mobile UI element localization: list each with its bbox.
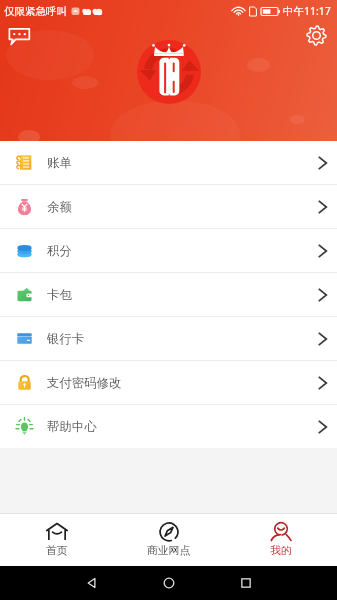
button[interactable]: Home <box>161 575 177 591</box>
button[interactable]: 银行卡 <box>0 317 337 360</box>
button[interactable]: 首页 <box>0 513 113 566</box>
button[interactable]: 帮助中心 <box>0 405 337 448</box>
staticText: 积分 <box>47 243 72 259</box>
button[interactable]: Settings <box>306 25 327 46</box>
button[interactable]: 支付密码修改 <box>0 361 337 404</box>
button[interactable]: 我的 <box>225 513 337 566</box>
staticText: 卡包 <box>47 287 72 303</box>
staticText: 首页 <box>46 544 68 558</box>
button[interactable]: Recents <box>238 575 254 591</box>
button[interactable]: 余额 <box>0 185 337 228</box>
button[interactable]: 卡包 <box>0 273 337 316</box>
button[interactable]: 积分 <box>0 229 337 272</box>
staticText: 帮助中心 <box>47 419 97 435</box>
staticText: 仅限紧急呼叫 <box>4 5 67 18</box>
button[interactable]: Logo <box>137 40 201 104</box>
button[interactable]: 账单 <box>0 141 337 184</box>
staticText: 支付密码修改 <box>47 375 122 391</box>
staticText: 我的 <box>270 544 292 558</box>
staticText: 中午11:17 <box>283 4 331 18</box>
staticText: 余额 <box>47 199 72 215</box>
button[interactable]: 商业网点 <box>113 513 225 566</box>
button[interactable]: Messages <box>7 24 31 48</box>
staticText: 银行卡 <box>47 331 85 347</box>
staticText: 账单 <box>47 155 72 171</box>
staticText: 商业网点 <box>147 544 191 558</box>
button[interactable]: Back <box>84 575 100 591</box>
